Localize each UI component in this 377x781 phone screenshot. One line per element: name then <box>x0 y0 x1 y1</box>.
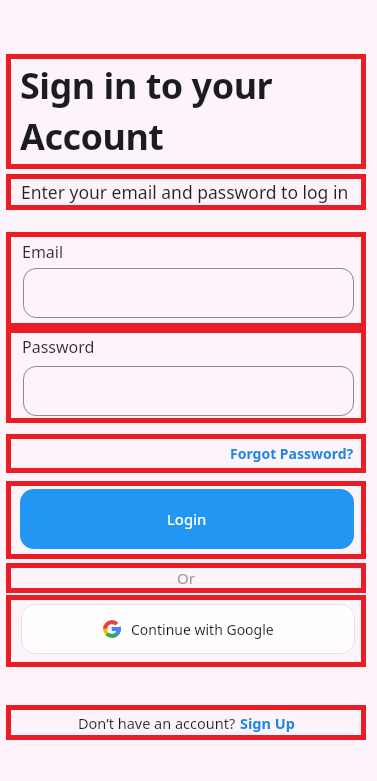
staticText: Login <box>167 509 207 529</box>
button[interactable]: Login <box>20 489 354 549</box>
staticText: Continue with Google <box>131 620 274 639</box>
button[interactable]: Forgot Password? <box>230 444 354 463</box>
button[interactable] <box>23 366 354 416</box>
staticText: Don’t have an account? <box>78 713 240 733</box>
staticText: Forgot Password? <box>230 444 354 463</box>
staticText: Email <box>22 241 64 263</box>
staticText: Enter your email and password to log in <box>21 180 349 204</box>
button[interactable]: Continue with Google <box>21 604 355 654</box>
button[interactable] <box>23 268 354 318</box>
staticText: Sign in to your Account <box>20 61 273 161</box>
staticText: Or <box>177 568 195 588</box>
staticText: Sign Up <box>240 713 295 733</box>
staticText: Password <box>22 336 95 358</box>
button[interactable]: Sign Up <box>240 713 295 733</box>
